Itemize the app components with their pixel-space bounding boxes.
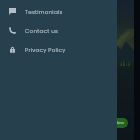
staticText: Contact us	[25, 27, 59, 35]
staticText: Testimonials	[25, 8, 63, 16]
button[interactable]: Privacy Policy	[0, 40, 117, 59]
button[interactable]: Contact us	[0, 21, 117, 40]
button[interactable]: Now	[110, 118, 128, 128]
staticText: Privacy Policy	[25, 46, 66, 54]
button[interactable]: Testimonials	[0, 2, 117, 21]
staticText: Now	[115, 120, 124, 126]
